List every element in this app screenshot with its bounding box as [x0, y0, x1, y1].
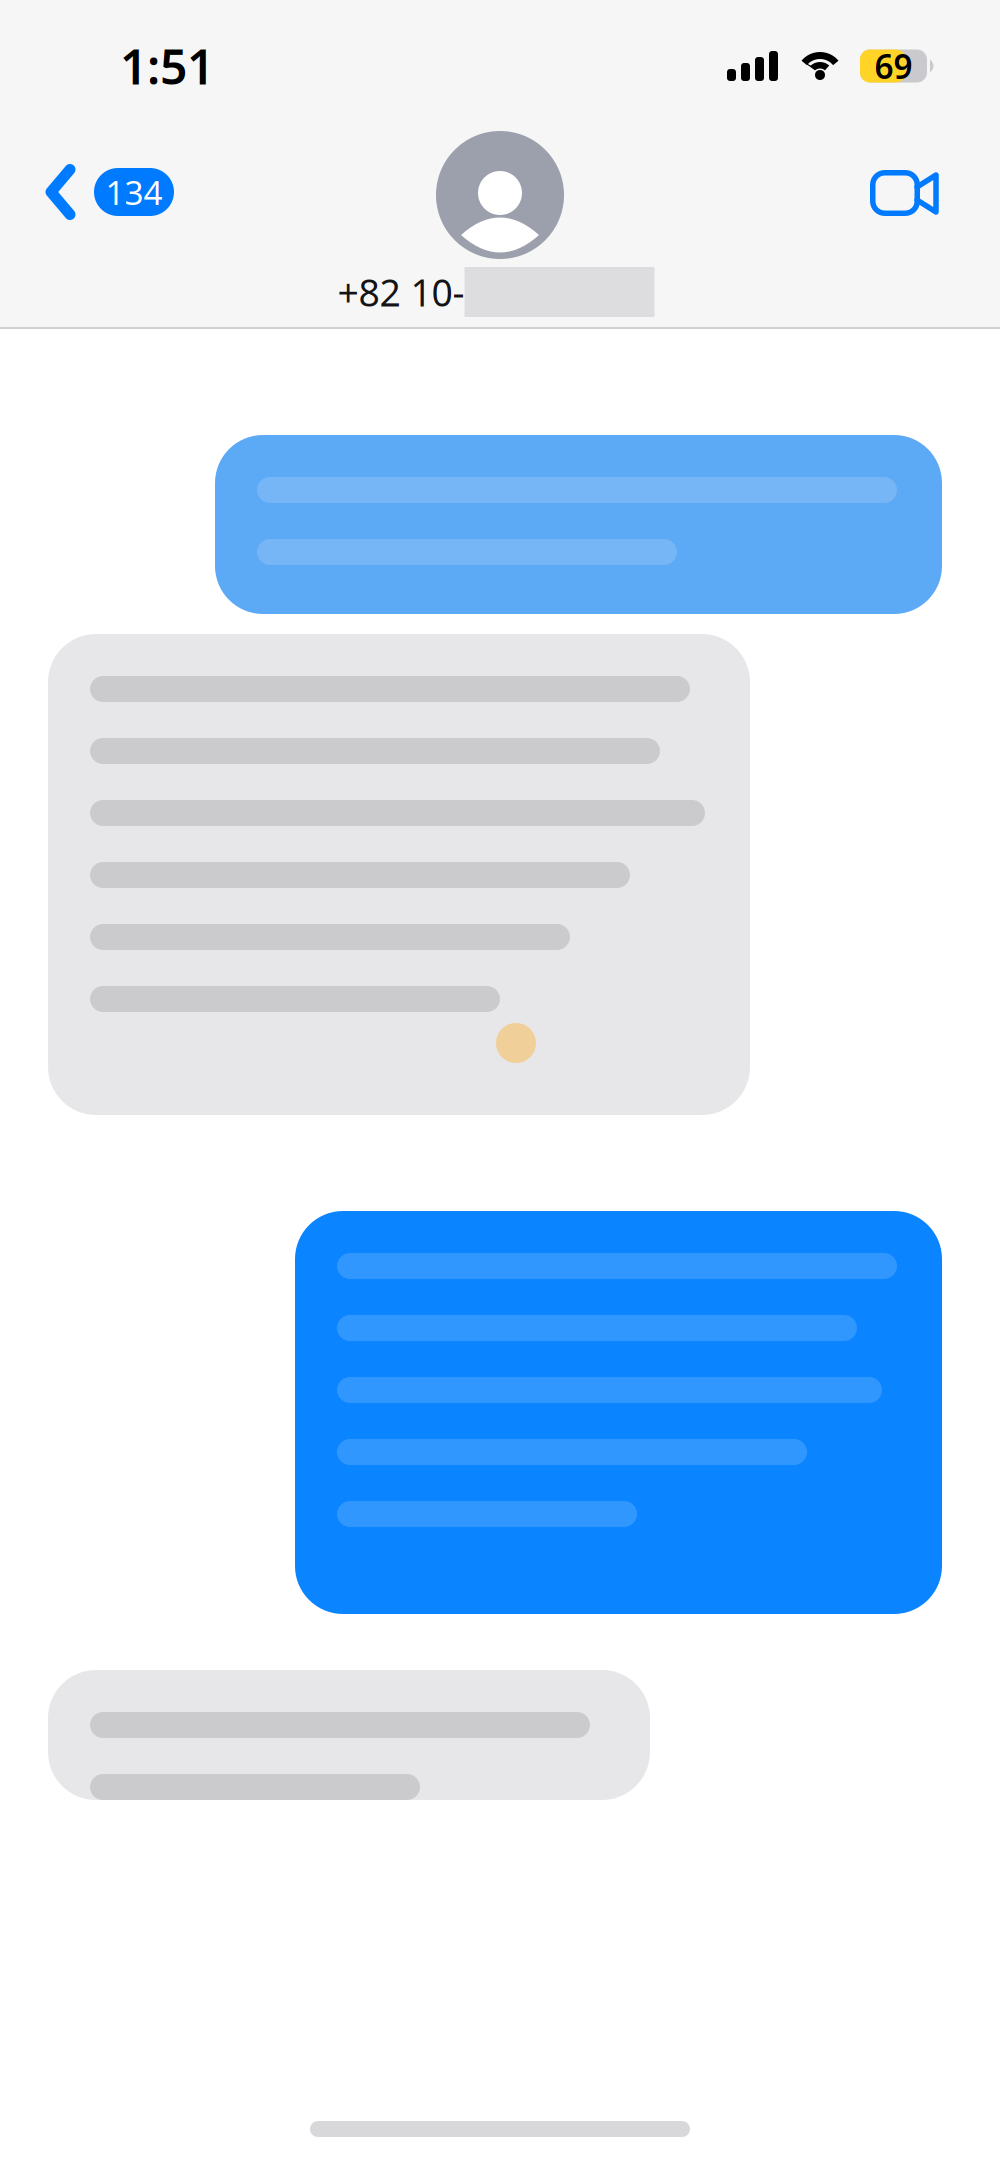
button[interactable]: Message you sent	[215, 435, 942, 614]
button[interactable]: Message received	[48, 1670, 650, 1800]
button[interactable]: Message received	[48, 634, 750, 1115]
button[interactable]: FaceTime	[842, 145, 1000, 241]
staticText: 69	[874, 44, 912, 88]
button[interactable]: 134	[0, 144, 194, 240]
button[interactable]: Message you sent	[295, 1211, 942, 1614]
staticText: 134	[105, 170, 162, 214]
staticText: +82 10-	[337, 267, 464, 317]
staticText: 1:51	[120, 34, 214, 98]
